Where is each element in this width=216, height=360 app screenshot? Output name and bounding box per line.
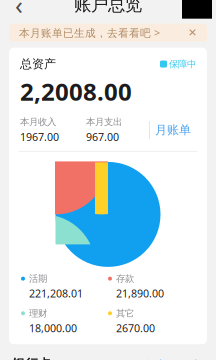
- button[interactable]: 本月账单已生成，去看看吧 >: [9, 24, 207, 42]
- staticText: 其它: [116, 307, 134, 319]
- staticText: 存款: [116, 273, 134, 284]
- staticText: +添加银行卡: [141, 357, 202, 360]
- staticText: 银行卡: [12, 356, 51, 360]
- staticText: ✕: [188, 27, 197, 39]
- staticText: 1967.00: [20, 130, 59, 144]
- button[interactable]: 返回: [4, 0, 34, 19]
- staticText: 理财: [29, 307, 47, 319]
- staticText: 2,2008.00: [20, 75, 132, 107]
- staticText: 21,890.00: [116, 286, 164, 301]
- staticText: 账户总览: [74, 0, 142, 15]
- staticText: 18,000.00: [29, 321, 77, 335]
- staticText: ‹: [15, 0, 23, 21]
- staticText: 221,208.01: [29, 286, 83, 301]
- staticText: 保障中: [169, 58, 196, 70]
- staticText: 本月收入: [20, 116, 56, 128]
- staticText: 本月账单已生成，去看看吧 >: [19, 26, 160, 40]
- staticText: 967.00: [86, 130, 119, 144]
- button[interactable]: 月账单: [150, 119, 196, 141]
- staticText: 2670.00: [116, 321, 155, 335]
- staticText: 活期: [29, 273, 47, 284]
- button[interactable]: +添加银行卡: [139, 353, 204, 360]
- staticText: 本月支出: [86, 116, 122, 128]
- staticText: 总资产: [20, 57, 56, 71]
- staticText: 月账单: [155, 123, 191, 137]
